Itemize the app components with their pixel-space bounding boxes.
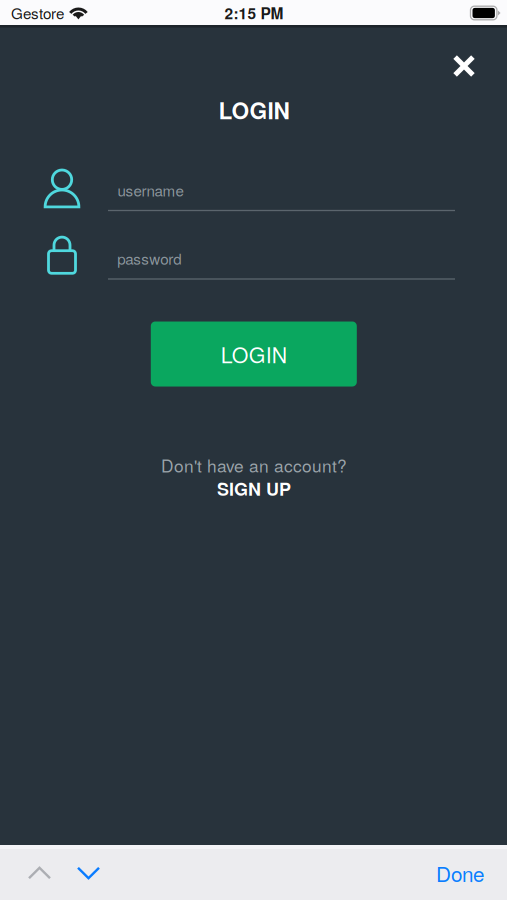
button[interactable]: password — [108, 237, 455, 280]
staticText: Done — [436, 858, 484, 888]
staticText: LOGIN — [221, 339, 287, 369]
staticText: Gestore — [11, 2, 64, 24]
button[interactable]: Next field — [63, 846, 113, 900]
button[interactable]: Done — [422, 846, 498, 900]
button[interactable]: Close — [442, 44, 486, 88]
staticText: Don't have an account? — [161, 453, 347, 477]
staticText: SIGN UP — [217, 476, 291, 501]
button[interactable]: Don't have an account? — [163, 453, 345, 499]
staticText: LOGIN — [218, 94, 289, 126]
button[interactable]: username — [108, 168, 455, 211]
staticText: password — [117, 247, 181, 269]
button[interactable]: Previous field — [14, 846, 64, 900]
button[interactable]: LOGIN — [151, 321, 357, 386]
staticText: username — [117, 179, 183, 201]
staticText: 2:15 PM — [224, 2, 283, 24]
